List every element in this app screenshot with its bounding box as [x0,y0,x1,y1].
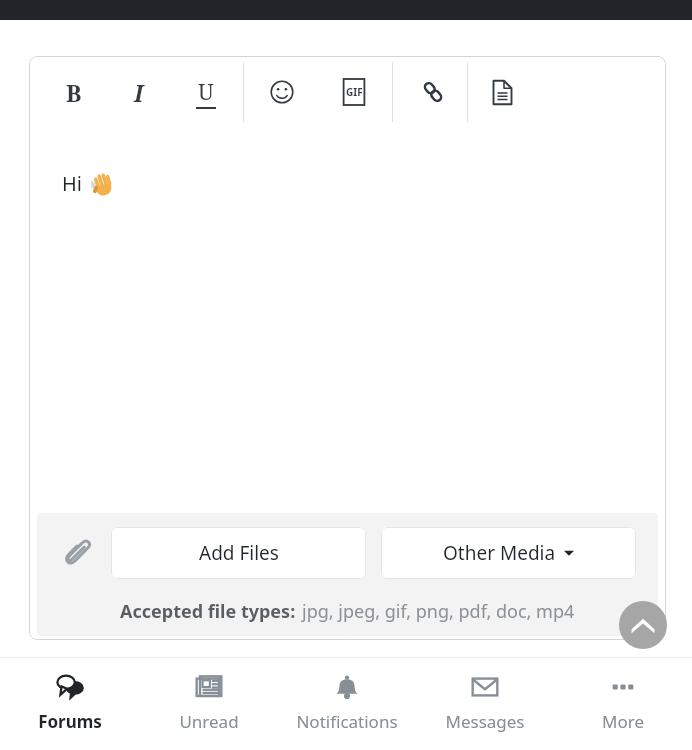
staticText: Forums [38,710,102,733]
staticText: B [66,77,82,108]
button[interactable]: Other Media [381,527,636,579]
button[interactable]: Attach file [59,535,95,571]
button[interactable]: Unread [139,658,278,750]
staticText: Unread [179,710,239,733]
staticText: Notifications [296,710,398,733]
staticText: Add Files [199,540,279,566]
button[interactable]: Insert link [416,75,450,109]
button[interactable]: Underline [189,75,223,109]
staticText: Hi [62,170,82,197]
button[interactable]: Italic [122,75,156,109]
staticText: jpg, jpeg, gif, png, pdf, doc, mp4 [302,599,575,624]
button[interactable]: Insert document [485,75,519,109]
button[interactable]: More [554,658,692,750]
staticText: Messages [445,710,525,733]
staticText: Accepted file types: [120,599,296,624]
button[interactable]: Messages [416,658,554,750]
button[interactable]: Forums [0,658,139,750]
staticText: GIF [346,85,363,99]
button[interactable]: Add Files [111,527,366,579]
staticText: More [602,710,644,733]
button[interactable]: Bold [57,75,91,109]
staticText: Other Media [443,540,556,566]
button[interactable]: Emoji [265,75,299,109]
button[interactable]: Scroll to top [619,601,667,649]
button[interactable]: Insert GIF [337,75,371,109]
staticText: U [198,76,214,106]
staticText: I [134,77,144,108]
button[interactable]: Notifications [278,658,416,750]
